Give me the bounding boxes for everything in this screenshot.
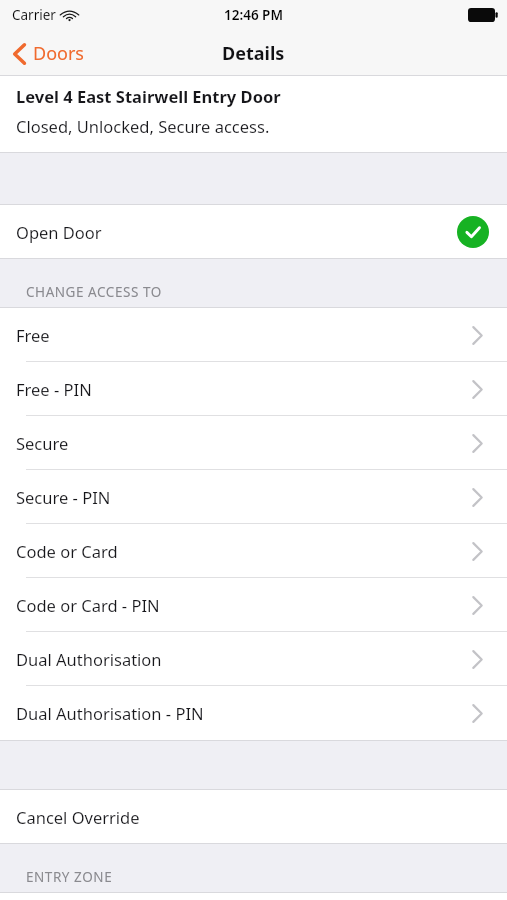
button[interactable]: Open Door [0,205,507,258]
button[interactable]: Doors [0,35,94,72]
staticText: Dual Authorisation [16,648,162,670]
staticText: Cancel Override [16,806,140,828]
staticText: Doors [33,41,84,66]
staticText: CHANGE ACCESS TO [26,283,162,301]
staticText: ENTRY ZONE [26,868,113,886]
button[interactable]: Code or Card - PIN [0,578,507,632]
other: Door open confirmed [457,216,489,248]
staticText: Level 4 East Stairwell Entry Door [16,85,281,107]
staticText: Open Door [16,221,102,243]
staticText: Secure - PIN [16,486,111,508]
button[interactable]: Secure - PIN [0,470,507,524]
button[interactable]: Secure [0,416,507,470]
staticText: Code or Card [16,540,118,562]
button[interactable]: Free - PIN [0,362,507,416]
staticText: Details [222,41,285,66]
button[interactable]: Free [0,308,507,362]
staticText: Secure [16,432,69,454]
staticText: 12:46 PM [224,6,283,24]
button[interactable]: Code or Card [0,524,507,578]
staticText: Free - PIN [16,378,92,400]
button[interactable]: Dual Authorisation - PIN [0,686,507,740]
staticText: Code or Card - PIN [16,594,160,616]
staticText: Carrier [12,6,56,24]
staticText: Free [16,324,50,346]
staticText: Closed, Unlocked, Secure access. [16,115,270,137]
button[interactable]: Dual Authorisation [0,632,507,686]
button[interactable]: Cancel Override [0,790,507,843]
staticText: Dual Authorisation - PIN [16,702,204,724]
